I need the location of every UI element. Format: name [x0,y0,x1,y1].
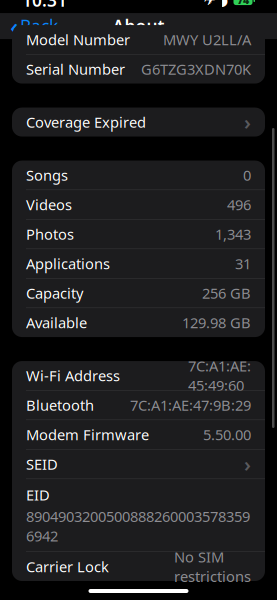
staticText: Serial Number [26,59,125,79]
button[interactable]: Available [12,308,265,337]
staticText: SEID [26,454,58,474]
staticText: 256 GB [202,283,251,303]
button[interactable]: Applications [12,249,265,278]
staticText: Bluetooth [26,395,94,415]
staticText: 7C:A1:AE:47:9B:29 [130,395,251,415]
button[interactable]: Modem Firmware [12,420,265,449]
button[interactable]: SEID [12,450,265,479]
staticText: Carrier Lock [26,557,109,576]
staticText: 1,343 [215,224,251,244]
staticText: 10:31 [22,0,67,12]
button[interactable]: ‹ [2,13,66,39]
staticText: Wi-Fi Address [26,366,120,385]
button[interactable]: Capacity [12,279,265,308]
staticText: Songs [26,165,68,185]
staticText: About [112,15,164,38]
staticText: G6TZG3XDN70K [141,59,251,79]
staticText: 5.50.00 [203,425,251,444]
staticText: 31 [235,254,251,273]
staticText: 74 [237,0,249,7]
staticText: No SIM restrictions [174,547,251,586]
button[interactable]: Wi-Fi Address [12,361,265,390]
staticText: 129.98 GB [182,313,251,332]
staticText: Back [20,15,58,38]
staticText: Model Number [26,30,130,49]
staticText: ◗ [220,0,228,8]
button[interactable]: EID [12,479,265,551]
staticText: EID [26,485,50,505]
button[interactable]: Carrier Lock [12,552,265,581]
button[interactable]: Bluetooth [12,391,265,420]
staticText: 496 [227,195,251,214]
staticText: Modem Firmware [26,425,149,444]
staticText: Coverage Expired [26,112,146,132]
staticText: 7C:A1:AE:45:49:60 [188,356,251,395]
button[interactable]: Serial Number [12,55,265,84]
staticText: ‹ [10,9,18,43]
button[interactable]: Videos [12,190,265,219]
staticText: Photos [26,224,74,244]
staticText: ✈ [203,0,215,8]
button[interactable]: Songs [12,161,265,190]
button[interactable]: Photos [12,220,265,249]
staticText: › [244,451,251,477]
staticText: Capacity [26,283,83,303]
staticText: › [244,109,251,135]
staticText: MWY U2LL/A [163,30,251,49]
staticText: Available [26,313,87,332]
button[interactable]: Model Number [12,25,265,54]
staticText: Applications [26,254,110,273]
button[interactable]: Coverage Expired [12,108,265,137]
staticText: 0 [243,165,251,185]
staticText: Videos [26,195,72,214]
staticText: 89049032005008882600035783596942 [26,506,250,545]
